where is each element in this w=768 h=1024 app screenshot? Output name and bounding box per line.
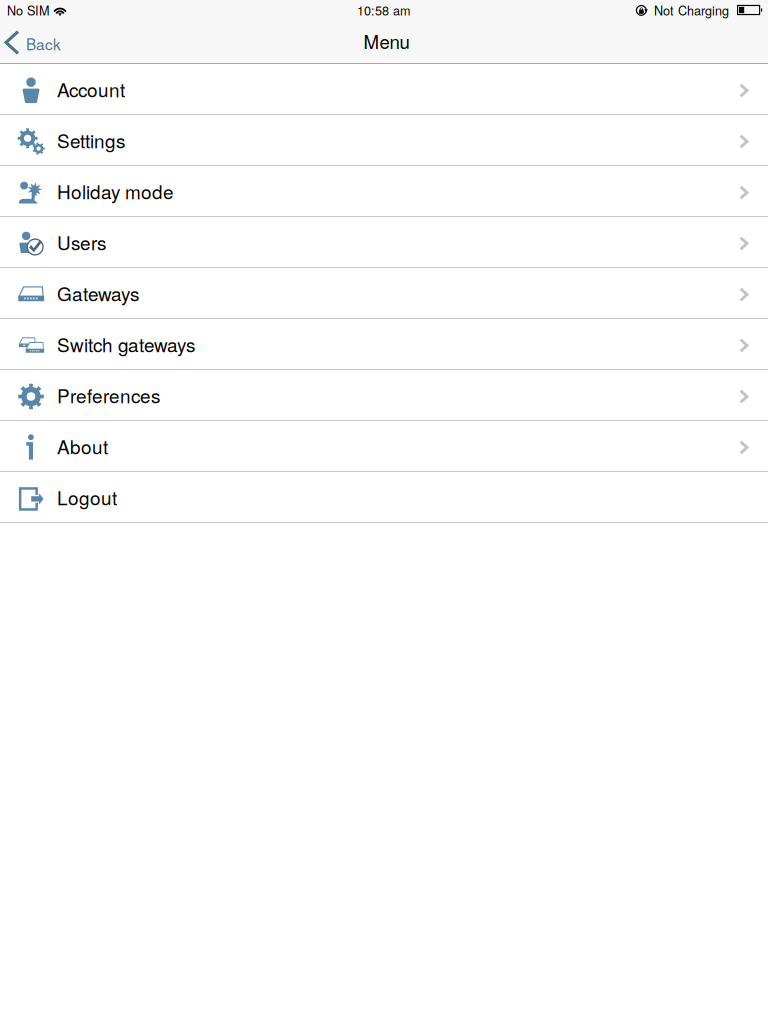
button[interactable]: Logout — [0, 472, 768, 523]
button[interactable]: Preferences — [0, 370, 768, 421]
staticText: No SIM — [7, 1, 50, 19]
staticText: 10:58 am — [357, 1, 411, 19]
button[interactable]: About — [0, 421, 768, 472]
button[interactable]: Holiday mode — [0, 166, 768, 217]
button[interactable]: Settings — [0, 115, 768, 166]
staticText: Gateways — [57, 279, 139, 306]
staticText: Switch gateways — [57, 330, 195, 357]
staticText: About — [57, 432, 108, 459]
staticText: Back — [26, 33, 61, 55]
staticText: Account — [57, 75, 125, 102]
staticText: Holiday mode — [57, 177, 174, 204]
staticText: Menu — [363, 28, 409, 54]
button[interactable]: Account — [0, 64, 768, 115]
button[interactable]: Gateways — [0, 268, 768, 319]
staticText: Users — [57, 228, 106, 255]
button[interactable]: Users — [0, 217, 768, 268]
staticText: Not Charging — [654, 1, 729, 19]
button[interactable]: Switch gateways — [0, 319, 768, 370]
button[interactable]: Back — [0, 20, 61, 62]
staticText: Preferences — [57, 381, 160, 408]
staticText: Settings — [57, 126, 125, 153]
staticText: Logout — [57, 483, 117, 510]
